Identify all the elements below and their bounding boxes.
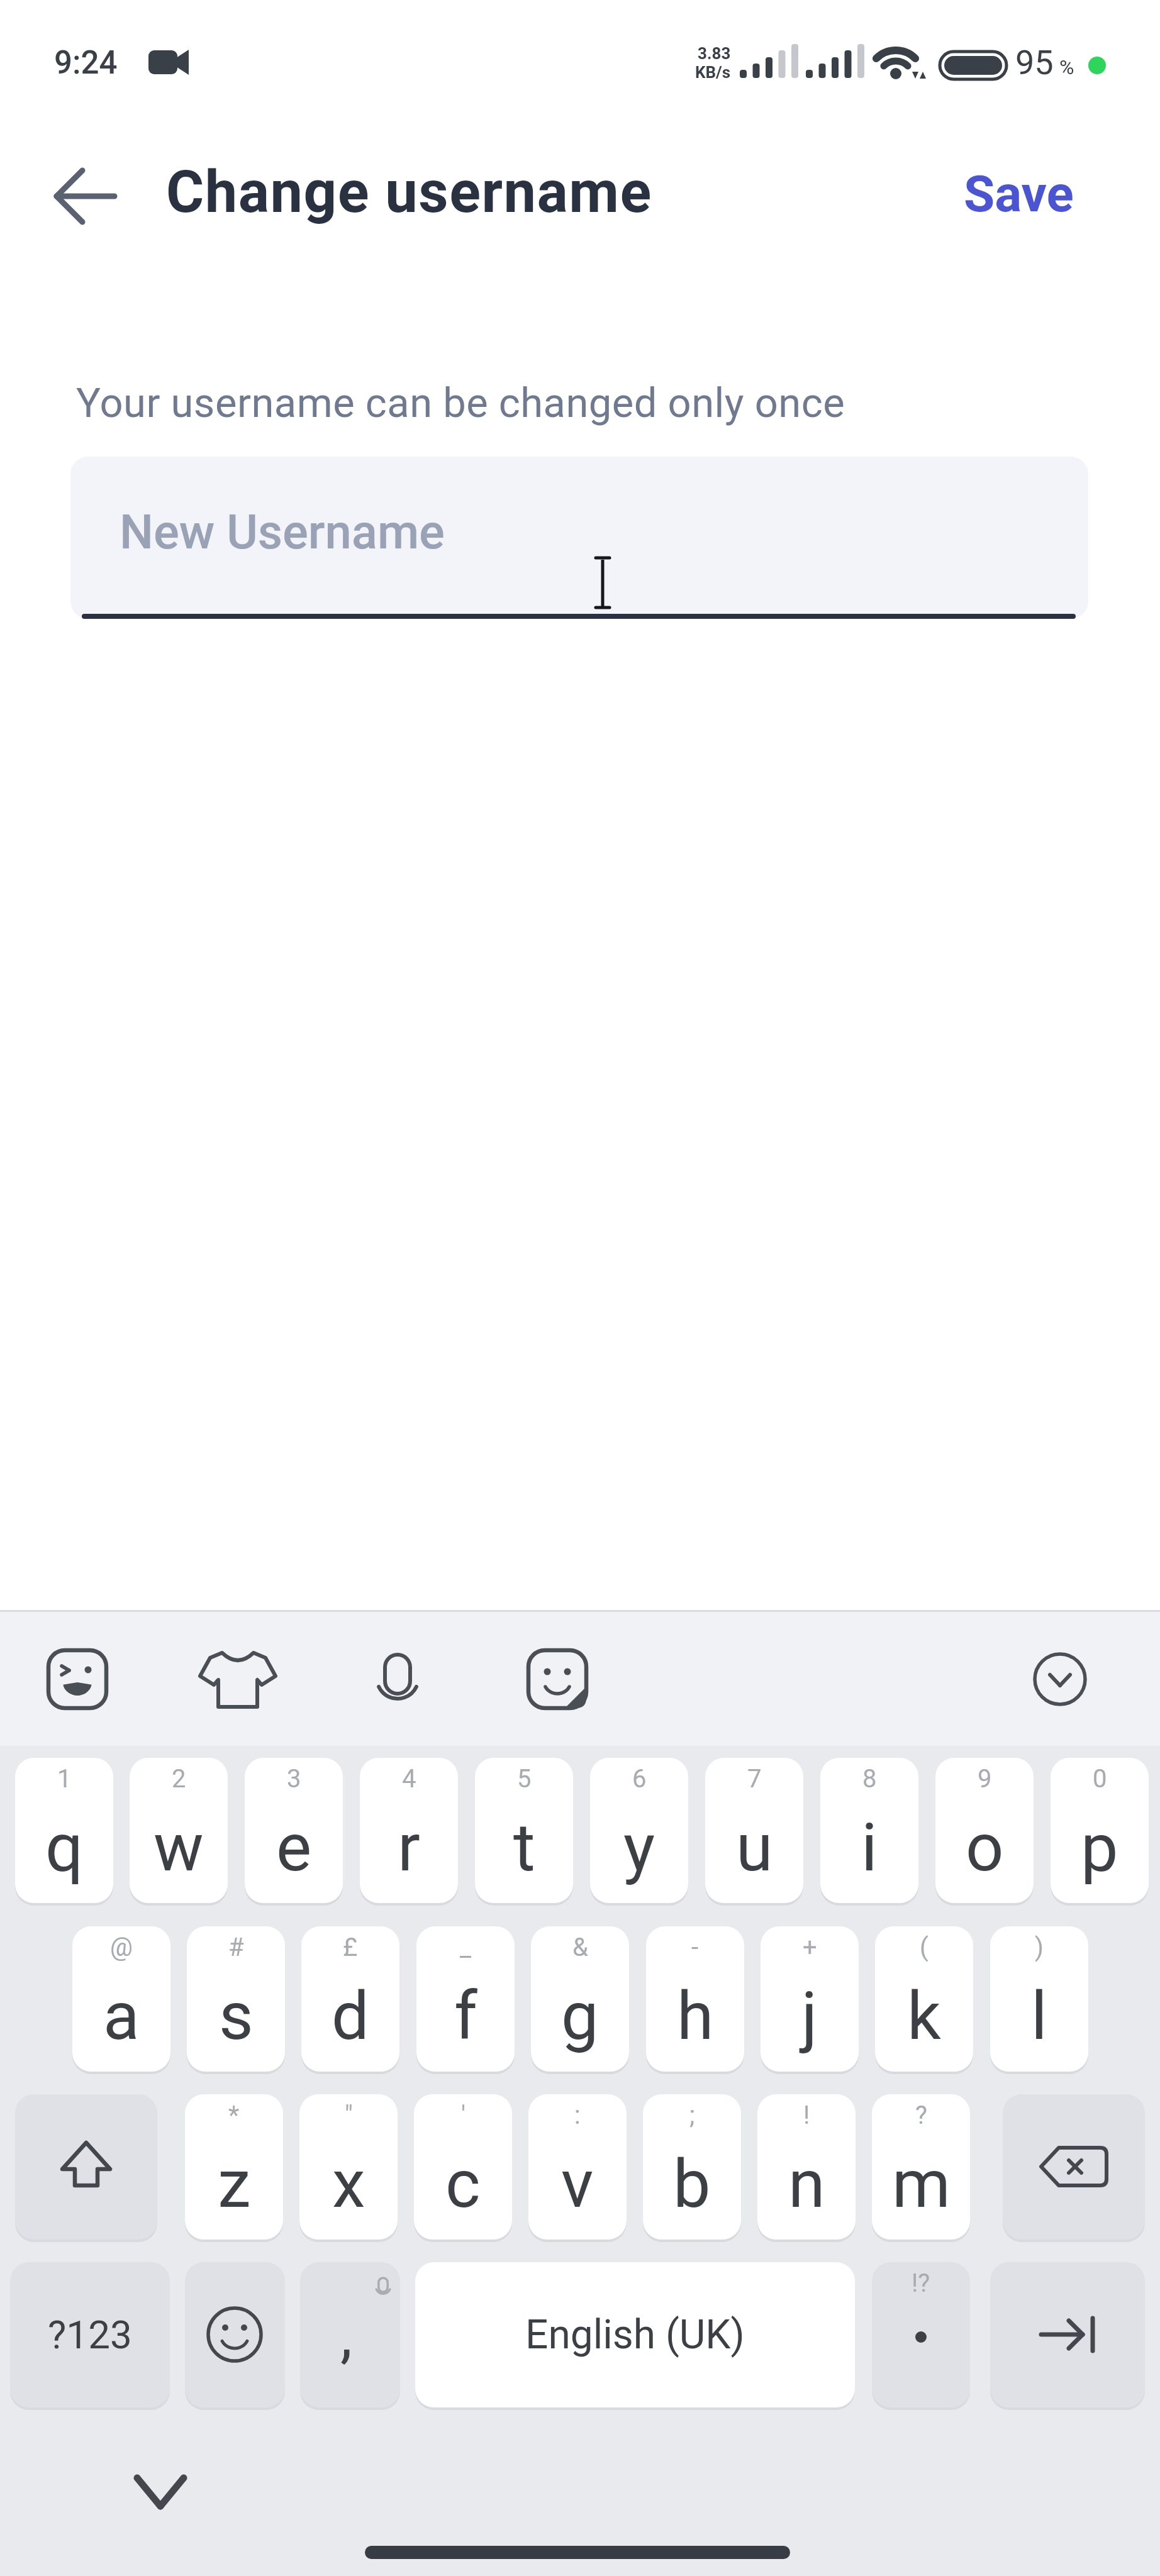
staticText: j bbox=[801, 1977, 818, 2055]
staticText: i bbox=[861, 1809, 878, 1887]
staticText: h bbox=[677, 1977, 714, 2055]
staticText: @ bbox=[110, 1933, 133, 1962]
staticText: e bbox=[276, 1809, 312, 1887]
staticText: _ bbox=[460, 1933, 472, 1962]
staticText: ! bbox=[803, 2101, 810, 2130]
staticText: ' bbox=[461, 2101, 466, 2130]
staticText: o bbox=[966, 1809, 1004, 1887]
staticText: # bbox=[228, 1933, 244, 1962]
staticText: , bbox=[340, 2300, 352, 2371]
staticText: 5 bbox=[517, 1764, 532, 1794]
staticText: ( bbox=[920, 1933, 929, 1962]
staticText: ? bbox=[915, 2101, 927, 2130]
staticText: p bbox=[1081, 1809, 1118, 1887]
staticText: Save bbox=[964, 165, 1074, 224]
staticText: v bbox=[561, 2145, 594, 2223]
staticText: s bbox=[219, 1977, 254, 2055]
staticText: l bbox=[1031, 1977, 1047, 2055]
staticText: ) bbox=[1035, 1933, 1044, 1962]
staticText: 8 bbox=[862, 1764, 877, 1794]
staticText: y bbox=[623, 1809, 655, 1887]
staticText: Change username bbox=[166, 158, 652, 226]
staticText: 2 bbox=[172, 1764, 186, 1794]
staticText: g bbox=[561, 1977, 599, 2055]
staticText: b bbox=[673, 2145, 711, 2223]
staticText: " bbox=[345, 2101, 353, 2130]
staticText: * bbox=[228, 2101, 240, 2130]
staticText: New Username bbox=[120, 504, 445, 560]
staticText: u bbox=[736, 1809, 773, 1887]
staticText: % bbox=[1059, 55, 1074, 79]
staticText: f bbox=[454, 1977, 477, 2055]
staticText: £ bbox=[343, 1933, 358, 1962]
staticText: 7 bbox=[747, 1764, 762, 1794]
staticText: - bbox=[691, 1933, 699, 1962]
staticText: q bbox=[45, 1809, 84, 1887]
staticText: 9 bbox=[978, 1764, 992, 1794]
staticText: z bbox=[218, 2145, 251, 2223]
staticText: 3.83 bbox=[698, 44, 731, 63]
staticText: c bbox=[445, 2145, 481, 2223]
staticText: x bbox=[332, 2145, 365, 2223]
staticText: : bbox=[574, 2101, 581, 2130]
staticText: t bbox=[513, 1809, 535, 1887]
staticText: ; bbox=[689, 2101, 695, 2130]
staticText: ?123 bbox=[48, 2312, 132, 2358]
staticText: 0 bbox=[1093, 1764, 1107, 1794]
staticText: & bbox=[572, 1933, 588, 1962]
staticText: d bbox=[332, 1977, 369, 2055]
staticText: 3 bbox=[287, 1764, 301, 1794]
staticText: 9:24 bbox=[54, 44, 118, 82]
staticText: 4 bbox=[402, 1764, 416, 1794]
staticText: m bbox=[892, 2145, 951, 2223]
staticText: !? bbox=[912, 2268, 930, 2298]
staticText: 1 bbox=[57, 1764, 72, 1794]
staticText: 6 bbox=[632, 1764, 647, 1794]
staticText: w bbox=[153, 1809, 204, 1887]
staticText: r bbox=[398, 1809, 420, 1887]
staticText: a bbox=[103, 1977, 140, 2055]
staticText: k bbox=[907, 1977, 941, 2055]
staticText: English (UK) bbox=[525, 2311, 745, 2358]
staticText: Your username can be changed only once bbox=[76, 379, 845, 427]
staticText: 95 bbox=[1015, 43, 1054, 82]
staticText: + bbox=[803, 1933, 817, 1962]
staticText: KB/s bbox=[695, 63, 731, 82]
staticText: n bbox=[788, 2145, 825, 2223]
